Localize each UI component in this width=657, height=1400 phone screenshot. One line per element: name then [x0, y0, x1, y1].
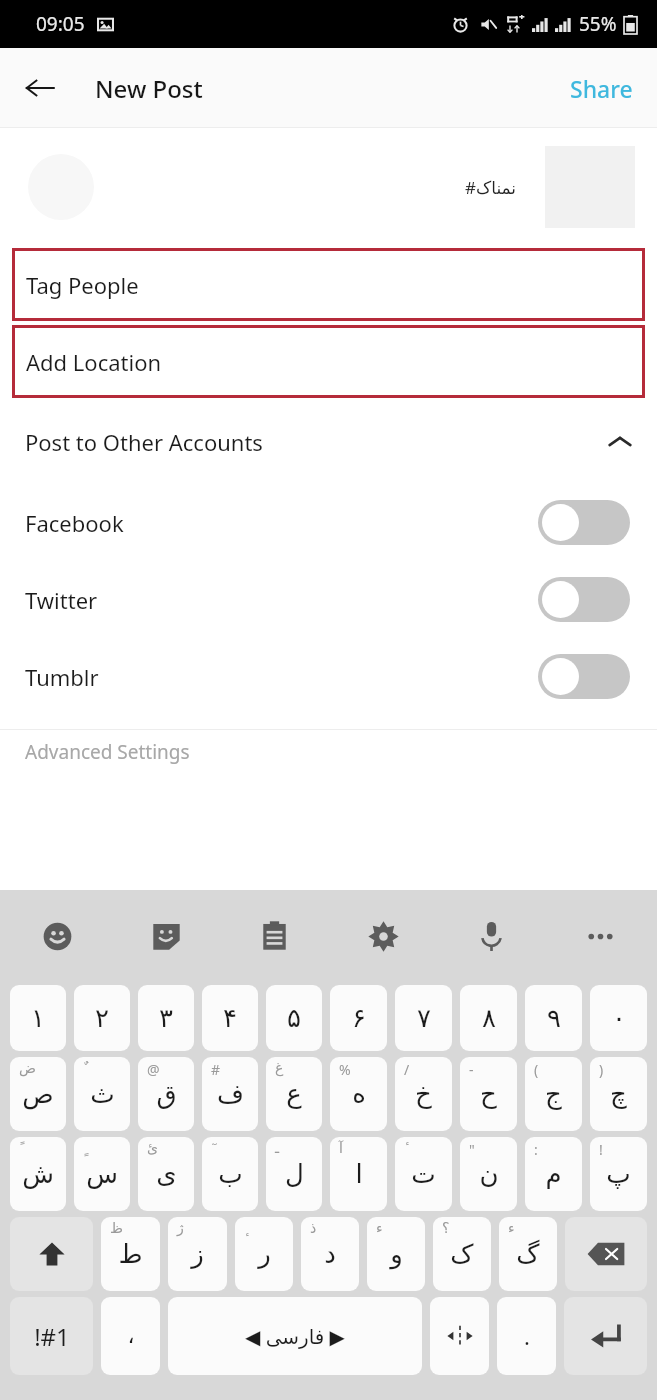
- staticText: ۰: [612, 1003, 626, 1033]
- button[interactable]: ۹: [525, 985, 582, 1051]
- button[interactable]: ح: [460, 1057, 517, 1131]
- button[interactable]: ۶: [330, 985, 387, 1051]
- button[interactable]: .: [497, 1297, 556, 1375]
- button[interactable]: ،: [101, 1297, 160, 1375]
- button[interactable]: ت: [395, 1137, 452, 1211]
- button[interactable]: Facebook: [0, 484, 657, 561]
- button[interactable]: ۵: [266, 985, 322, 1051]
- button[interactable]: د: [301, 1217, 359, 1291]
- button[interactable]: م: [525, 1137, 582, 1211]
- button[interactable]: Emoji: [30, 909, 84, 963]
- staticText: ـ: [275, 1140, 280, 1156]
- staticText: @: [147, 1060, 160, 1079]
- button[interactable]: Add Location: [12, 325, 645, 398]
- button[interactable]: ص: [10, 1057, 66, 1131]
- staticText: -: [469, 1060, 474, 1079]
- button[interactable]: !#1: [10, 1297, 93, 1375]
- button[interactable]: ۰: [590, 985, 647, 1051]
- button[interactable]: ۳: [138, 985, 194, 1051]
- staticText: ،: [127, 1323, 135, 1349]
- button[interactable]: ث: [74, 1057, 130, 1131]
- staticText: ظ: [110, 1220, 123, 1236]
- button[interactable]: س: [74, 1137, 130, 1211]
- button[interactable]: ل: [266, 1137, 322, 1211]
- button[interactable]: گ: [499, 1217, 557, 1291]
- button[interactable]: More options: [573, 909, 627, 963]
- button[interactable]: ج: [525, 1057, 582, 1131]
- staticText: :: [534, 1140, 538, 1159]
- staticText: .: [524, 1321, 530, 1351]
- staticText: ن: [479, 1159, 499, 1189]
- staticText: خ: [415, 1079, 432, 1109]
- button[interactable]: ۱: [10, 985, 66, 1051]
- staticText: #: [211, 1060, 221, 1079]
- staticText: New Post: [95, 72, 203, 105]
- button[interactable]: خ: [395, 1057, 452, 1131]
- button[interactable]: Tag People: [12, 248, 645, 321]
- staticText: #نمناک: [465, 176, 517, 199]
- button[interactable]: ق: [138, 1057, 194, 1131]
- button[interactable]: Tumblr: [0, 638, 657, 715]
- staticText: ق: [156, 1079, 177, 1109]
- button[interactable]: ه: [330, 1057, 387, 1131]
- button[interactable]: ط: [101, 1217, 160, 1291]
- button[interactable]: ش: [10, 1137, 66, 1211]
- staticText: د: [324, 1239, 336, 1269]
- button[interactable]: ۸: [460, 985, 517, 1051]
- staticText: ۳: [159, 1003, 173, 1033]
- staticText: غ: [275, 1060, 284, 1076]
- button[interactable]: Backspace: [565, 1217, 647, 1291]
- staticText: Tumblr: [25, 662, 99, 692]
- staticText: ء: [376, 1220, 383, 1236]
- button[interactable]: ف: [202, 1057, 258, 1131]
- button[interactable]: پ: [590, 1137, 647, 1211]
- button[interactable]: Clipboard: [247, 909, 301, 963]
- button[interactable]: ۲: [74, 985, 130, 1051]
- button[interactable]: Twitter: [0, 561, 657, 638]
- button[interactable]: ن: [460, 1137, 517, 1211]
- button[interactable]: Advanced Settings: [0, 730, 657, 774]
- button[interactable]: Voice input: [464, 909, 518, 963]
- staticText: ۵: [287, 1003, 301, 1033]
- button[interactable]: Stickers: [139, 909, 193, 963]
- button[interactable]: ۷: [395, 985, 452, 1051]
- staticText: و: [390, 1239, 403, 1269]
- staticText: س: [86, 1159, 118, 1189]
- staticText: پ: [606, 1159, 631, 1189]
- button[interactable]: ◀ فارسی ▶: [168, 1297, 422, 1375]
- staticText: ": [469, 1140, 475, 1159]
- button[interactable]: ی: [138, 1137, 194, 1211]
- button[interactable]: Enter: [564, 1297, 647, 1375]
- button[interactable]: ۴: [202, 985, 258, 1051]
- button[interactable]: ب: [202, 1137, 258, 1211]
- staticText: /: [404, 1060, 410, 1079]
- button[interactable]: Post to Other Accounts: [0, 400, 657, 484]
- button[interactable]: #نمناک: [0, 128, 657, 246]
- button[interactable]: Back: [14, 62, 66, 114]
- staticText: (: [534, 1060, 539, 1079]
- staticText: Facebook: [25, 508, 124, 538]
- staticText: Advanced Settings: [25, 739, 190, 765]
- button[interactable]: Share: [556, 63, 647, 114]
- button[interactable]: Settings: [356, 909, 410, 963]
- button[interactable]: Move cursor: [430, 1297, 489, 1375]
- button[interactable]: چ: [590, 1057, 647, 1131]
- staticText: Post to Other Accounts: [25, 427, 263, 457]
- button[interactable]: ا: [330, 1137, 387, 1211]
- staticText: !#1: [34, 1320, 70, 1353]
- staticText: 09:05: [36, 11, 85, 37]
- staticText: ر: [258, 1239, 271, 1269]
- staticText: ◀ فارسی ▶: [245, 1323, 345, 1350]
- button[interactable]: ک: [433, 1217, 491, 1291]
- button[interactable]: ع: [266, 1057, 322, 1131]
- staticText: ص: [22, 1079, 54, 1109]
- staticText: ث: [90, 1079, 115, 1109]
- button[interactable]: Shift: [10, 1217, 93, 1291]
- button[interactable]: ر: [235, 1217, 293, 1291]
- button[interactable]: و: [367, 1217, 425, 1291]
- staticText: ب: [218, 1159, 243, 1189]
- button[interactable]: ز: [168, 1217, 227, 1291]
- staticText: ش: [22, 1159, 54, 1189]
- staticText: ز: [191, 1239, 204, 1269]
- staticText: Twitter: [25, 585, 98, 615]
